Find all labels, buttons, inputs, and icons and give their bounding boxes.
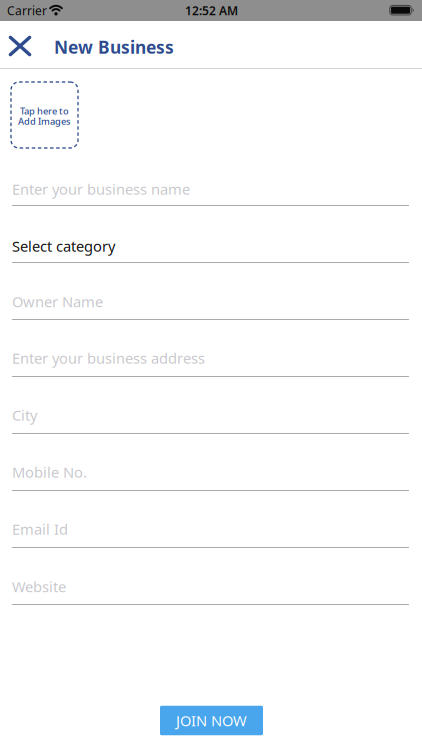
- staticText: Carrier: [7, 2, 47, 18]
- staticText: Enter your business name: [12, 179, 190, 199]
- staticText: Mobile No.: [12, 462, 87, 482]
- staticText: City: [12, 405, 37, 425]
- staticText: New Business: [54, 35, 174, 58]
- button[interactable]: Close: [0, 29, 40, 63]
- staticText: 12:52 AM: [185, 2, 238, 18]
- button[interactable]: Select category: [0, 224, 422, 268]
- button[interactable]: Website: [0, 574, 422, 598]
- staticText: Owner Name: [12, 292, 103, 311]
- button[interactable]: Email Id: [0, 517, 422, 541]
- button[interactable]: City: [0, 403, 422, 427]
- staticText: Email Id: [12, 519, 68, 539]
- staticText: Tap here to: [20, 105, 69, 117]
- staticText: JOIN NOW: [176, 711, 247, 730]
- button[interactable]: Tap here to: [11, 82, 78, 148]
- staticText: Enter your business address: [12, 348, 205, 368]
- staticText: Select category: [12, 236, 115, 256]
- button[interactable]: Enter your business name: [0, 177, 422, 201]
- staticText: Website: [12, 577, 66, 596]
- staticText: Add Images: [18, 115, 71, 127]
- button[interactable]: Mobile No.: [0, 460, 422, 484]
- button[interactable]: Enter your business address: [0, 346, 422, 370]
- button[interactable]: JOIN NOW: [160, 706, 263, 735]
- button[interactable]: Owner Name: [0, 289, 422, 313]
